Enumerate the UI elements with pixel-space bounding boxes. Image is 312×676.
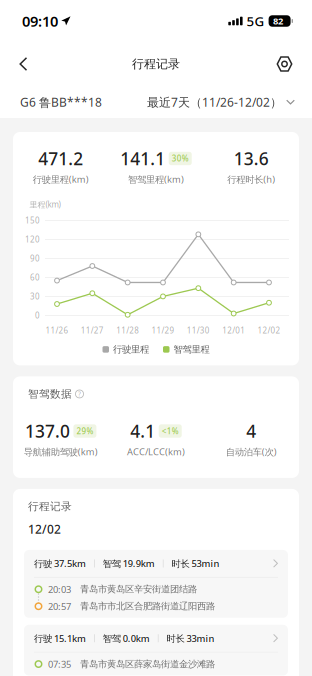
staticText: 471.2 bbox=[38, 147, 83, 170]
staticText: 12/02 bbox=[257, 325, 280, 336]
staticText: 20:03 bbox=[48, 583, 71, 595]
staticText: 时长 33min bbox=[167, 632, 215, 644]
staticText: 智驾里程(km) bbox=[128, 173, 184, 185]
staticText: 30 bbox=[30, 291, 40, 302]
staticText: 13.6 bbox=[234, 147, 269, 170]
button[interactable]: 最近7天（11/26-12/02） bbox=[147, 88, 312, 116]
staticText: 行驶里程(km) bbox=[33, 173, 89, 185]
staticText: 82 bbox=[273, 15, 283, 27]
staticText: 行程时长(h) bbox=[227, 173, 275, 185]
staticText: 09:10 bbox=[22, 11, 58, 31]
staticText: 30% bbox=[172, 153, 189, 164]
staticText: 07:35 bbox=[48, 658, 71, 670]
staticText: 0 bbox=[35, 310, 40, 321]
staticText: 智驾数据 bbox=[28, 387, 72, 400]
staticText: 12/01 bbox=[222, 325, 245, 336]
staticText: 60 bbox=[30, 272, 40, 283]
staticText: 11/29 bbox=[151, 325, 174, 336]
staticText: 120 bbox=[25, 234, 40, 245]
staticText: 11/30 bbox=[187, 325, 210, 336]
staticText: 自动泊车(次) bbox=[226, 445, 277, 458]
staticText: 4 bbox=[246, 419, 256, 442]
staticText: 时长 53min bbox=[172, 557, 220, 570]
staticText: 90 bbox=[30, 253, 40, 264]
button[interactable]: 行驶 15.1km bbox=[24, 625, 288, 676]
staticText: G6 鲁BB***18 bbox=[20, 94, 102, 110]
staticText: 智驾 19.9km bbox=[103, 557, 155, 570]
staticText: <1% bbox=[162, 426, 179, 436]
staticText: 12/02 bbox=[28, 521, 61, 537]
staticText: 4.1 bbox=[130, 419, 155, 442]
staticText: 智驾 0.0km bbox=[103, 632, 150, 644]
button[interactable]: 行驶 37.5km bbox=[24, 550, 288, 618]
staticText: ? bbox=[78, 389, 81, 398]
staticText: 行驶 15.1km bbox=[34, 632, 86, 644]
staticText: 11/26 bbox=[45, 325, 68, 336]
button[interactable]: 返回 bbox=[7, 46, 40, 82]
staticText: 青岛市黄岛区辛安街道团结路 bbox=[80, 583, 197, 595]
staticText: 行程记录 bbox=[132, 57, 180, 71]
staticText: 行驶 37.5km bbox=[34, 557, 86, 570]
staticText: 137.0 bbox=[25, 419, 70, 442]
staticText: 11/27 bbox=[81, 325, 104, 336]
staticText: ACC/LCC(km) bbox=[127, 445, 185, 458]
staticText: 11/28 bbox=[116, 325, 139, 336]
staticText: 150 bbox=[25, 215, 40, 226]
staticText: 智驾里程 bbox=[173, 344, 209, 355]
staticText: 141.1 bbox=[120, 147, 165, 170]
staticText: 里程(km) bbox=[29, 199, 60, 210]
staticText: 20:57 bbox=[48, 600, 71, 612]
button[interactable]: 设置 bbox=[264, 46, 305, 82]
staticText: 青岛市黄岛区薛家岛街道金沙滩路 bbox=[80, 658, 215, 670]
staticText: 29% bbox=[76, 426, 93, 436]
staticText: 5G bbox=[247, 12, 265, 30]
staticText: 行驶里程 bbox=[113, 344, 149, 355]
staticText: 最近7天（11/26-12/02） bbox=[147, 94, 282, 110]
staticText: 导航辅助驾驶(km) bbox=[24, 445, 98, 458]
staticText: 行程记录 bbox=[28, 500, 72, 513]
staticText: 青岛市市北区合肥路街道辽阳西路 bbox=[80, 600, 215, 612]
